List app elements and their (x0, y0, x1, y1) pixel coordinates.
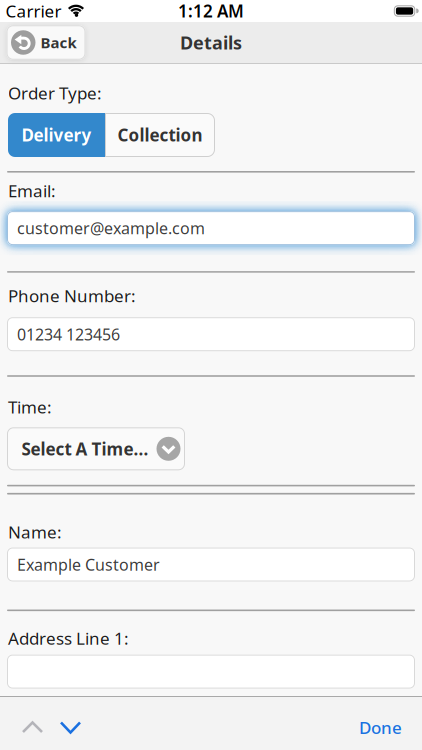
staticText: Name: (8, 521, 62, 543)
staticText: Delivery (21, 124, 91, 146)
staticText: Phone Number: (8, 284, 136, 307)
staticText: Details (180, 30, 242, 54)
staticText: Carrier (5, 0, 61, 22)
button[interactable]: customer@example.com (7, 211, 415, 245)
staticText: Order Type: (8, 82, 102, 104)
staticText: Back (40, 32, 76, 52)
staticText: 01234 123456 (17, 324, 120, 345)
staticText: customer@example.com (17, 217, 205, 239)
button[interactable]: Previous field (0, 722, 42, 733)
staticText: 1:12 AM (178, 0, 244, 22)
button[interactable]: Collection (105, 113, 215, 157)
staticText: Done (359, 716, 402, 739)
button[interactable]: Next field (42, 722, 80, 733)
button[interactable]: Delivery (8, 113, 105, 157)
staticText: Time: (8, 395, 52, 418)
button[interactable]: Example Customer (7, 547, 415, 581)
staticText: Collection (117, 124, 202, 146)
button[interactable]: Back (6, 25, 85, 60)
button[interactable]: Select A Time... (7, 427, 185, 470)
button[interactable]: 01234 123456 (7, 317, 415, 351)
button[interactable] (7, 655, 415, 689)
button[interactable]: Done (359, 716, 422, 739)
staticText: Example Customer (17, 554, 160, 575)
staticText: Select A Time... (21, 437, 148, 460)
staticText: Email: (8, 179, 56, 202)
staticText: Address Line 1: (8, 627, 129, 649)
